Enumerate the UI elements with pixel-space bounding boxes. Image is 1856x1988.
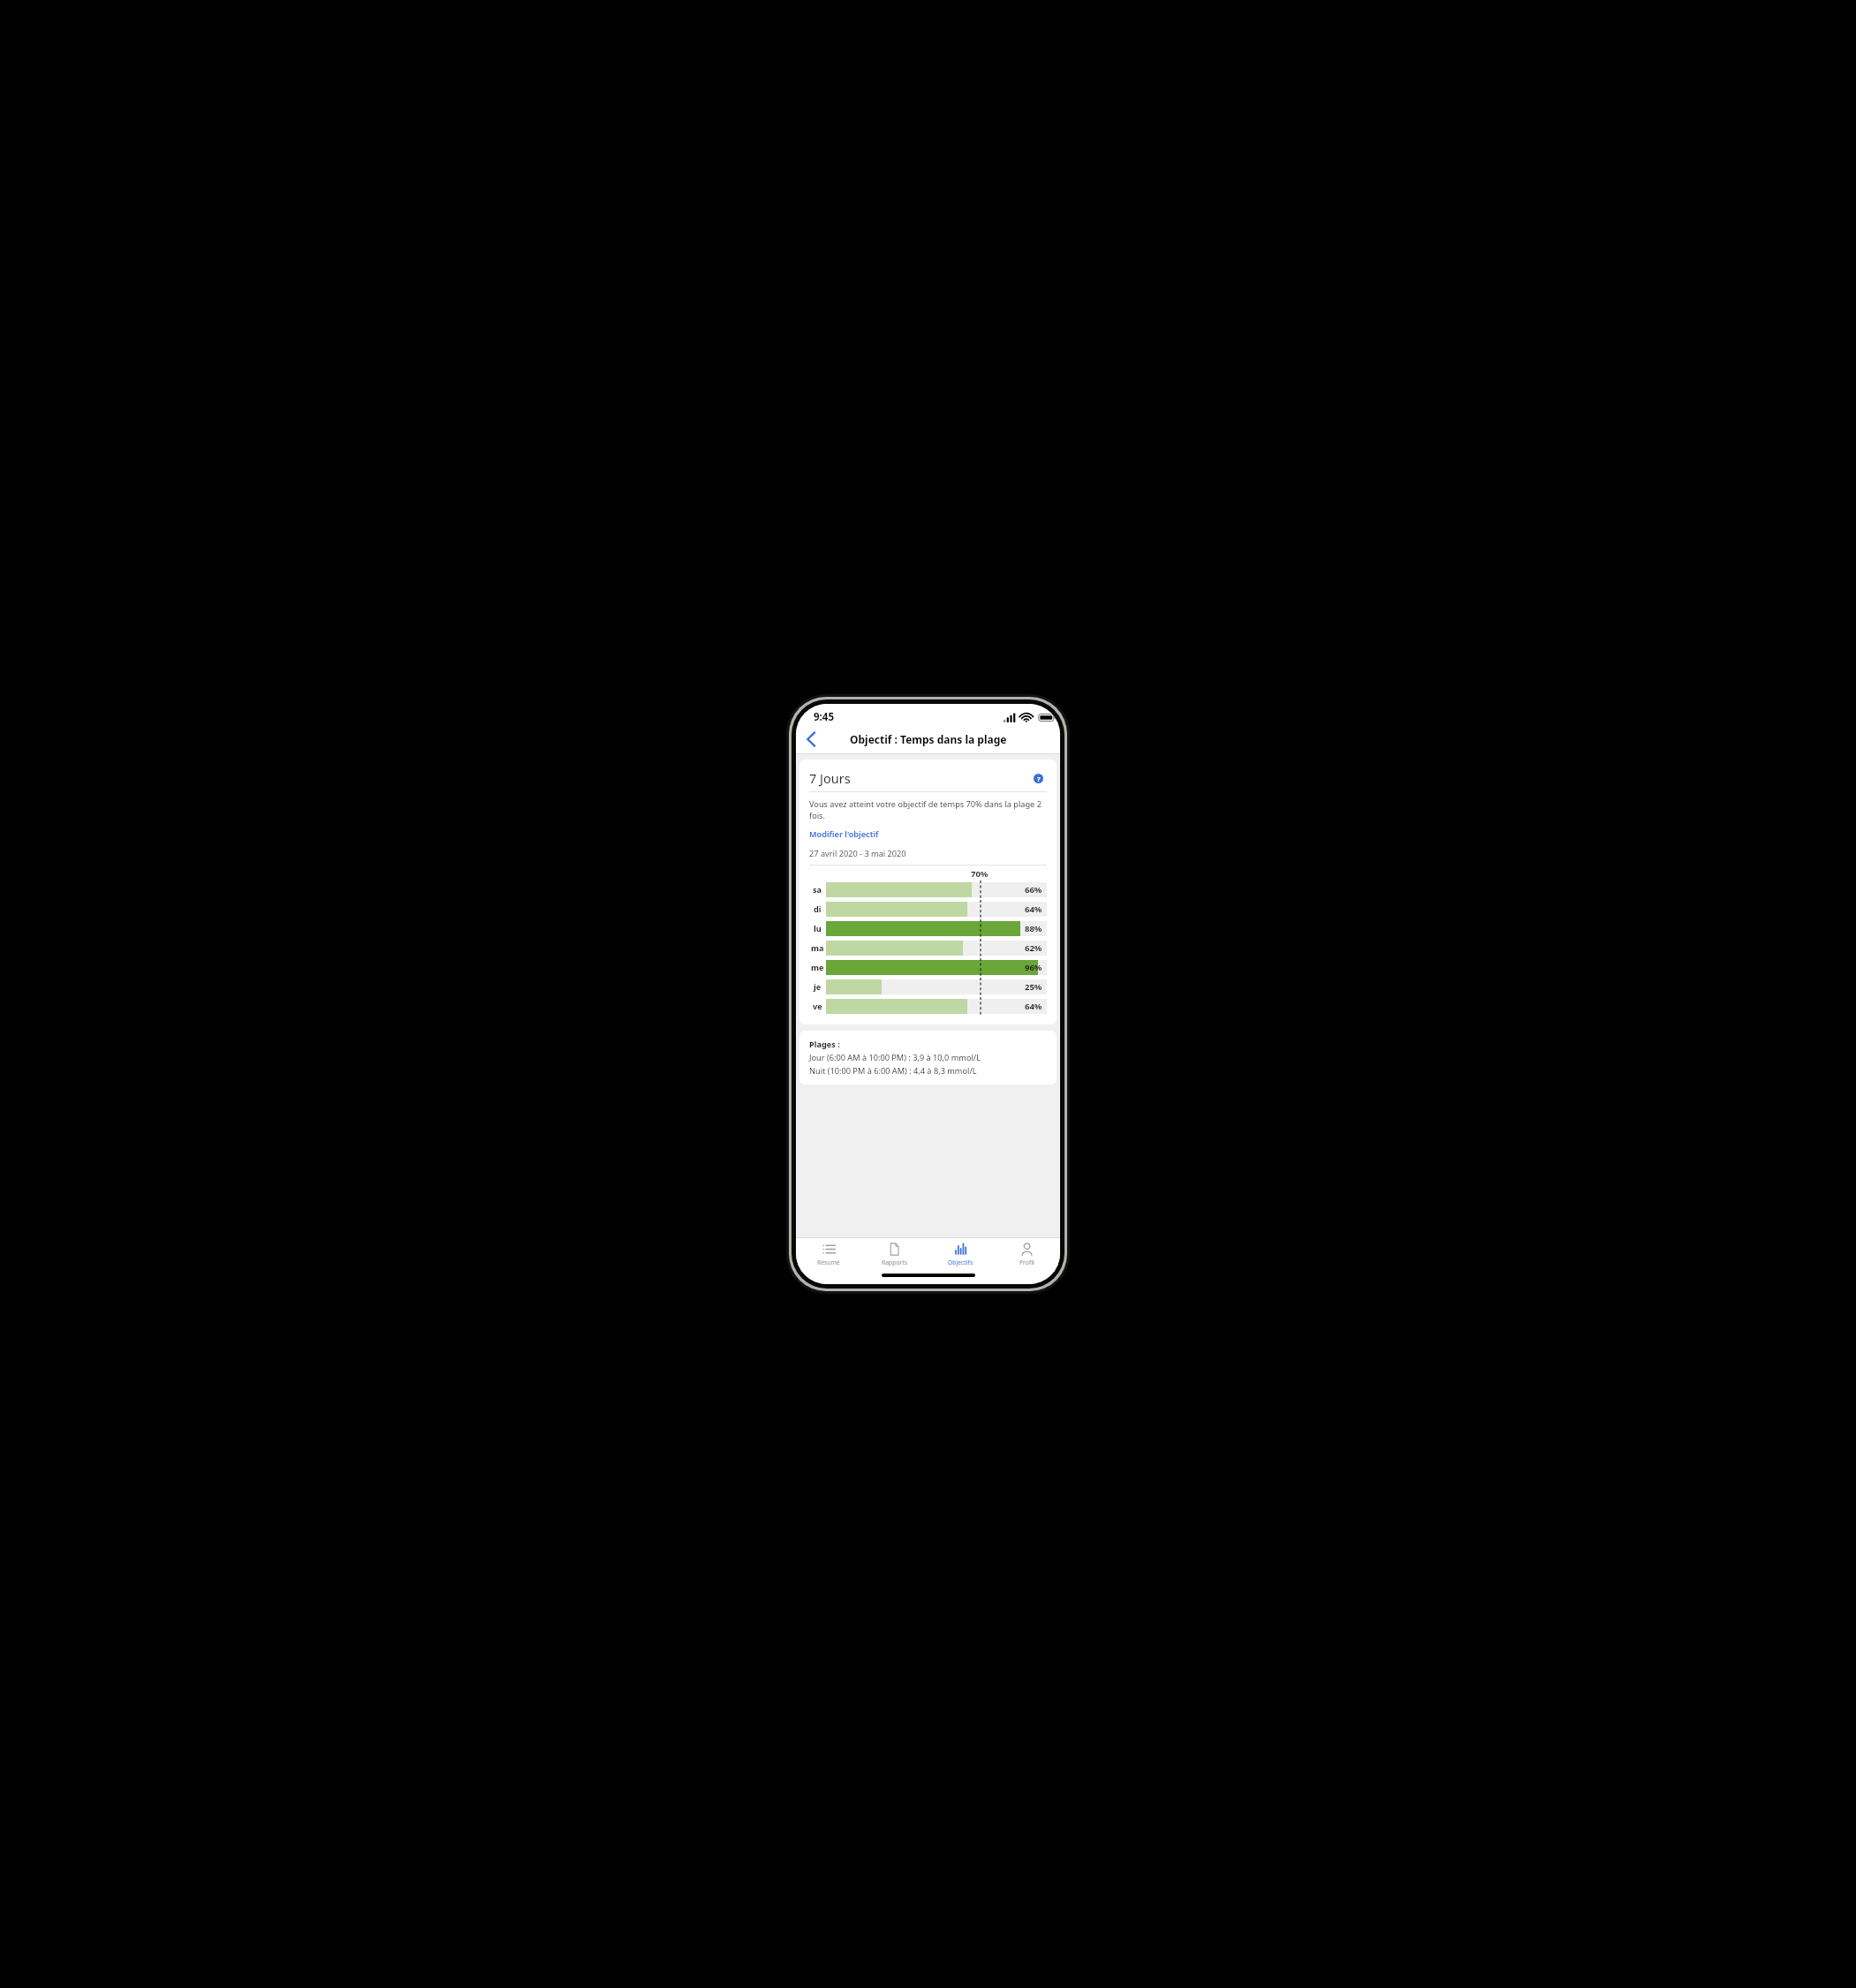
staticText: 66% bbox=[1025, 884, 1042, 896]
staticText: 25% bbox=[1025, 981, 1042, 993]
staticText: 64% bbox=[1025, 1001, 1042, 1012]
staticText: Nuit (10:00 PM à 6:00 AM) : 4,4 à 8,3 mm… bbox=[809, 1065, 977, 1077]
staticText: Jour (6:00 AM à 10:00 PM) : 3,9 à 10,0 m… bbox=[809, 1052, 981, 1063]
staticText: Vous avez atteint votre objectif de temp… bbox=[809, 798, 1047, 821]
staticText: sa bbox=[813, 884, 822, 896]
staticText: 9:45 bbox=[814, 710, 834, 724]
staticText: Objectif : Temps dans la plage bbox=[850, 732, 1007, 746]
staticText: Profil bbox=[1019, 1259, 1034, 1266]
button[interactable]: Profil bbox=[994, 1238, 1060, 1270]
staticText: 27 avril 2020 - 3 mai 2020 bbox=[809, 848, 906, 859]
staticText: di bbox=[814, 903, 822, 915]
button[interactable]: Modifier l'objectif bbox=[809, 828, 879, 840]
staticText: 7 Jours bbox=[809, 769, 851, 787]
staticText: Rapports bbox=[882, 1259, 908, 1266]
staticText: ? bbox=[1037, 775, 1041, 783]
button[interactable]: Retour bbox=[796, 727, 826, 752]
staticText: ve bbox=[813, 1001, 822, 1012]
staticText: Plages : bbox=[809, 1039, 840, 1050]
staticText: 62% bbox=[1025, 942, 1042, 954]
staticText: Objectifs bbox=[948, 1259, 973, 1266]
button[interactable]: Rapports bbox=[861, 1238, 928, 1270]
staticText: je bbox=[814, 981, 822, 993]
staticText: 96% bbox=[1025, 962, 1042, 973]
staticText: Modifier l'objectif bbox=[809, 828, 879, 840]
staticText: lu bbox=[814, 923, 822, 934]
staticText: me bbox=[811, 962, 824, 973]
staticText: 64% bbox=[1025, 903, 1042, 915]
button[interactable]: Objectifs bbox=[928, 1238, 994, 1270]
staticText: 70% bbox=[971, 868, 989, 880]
staticText: ma bbox=[811, 942, 824, 954]
staticText: Résumé bbox=[817, 1259, 840, 1266]
button[interactable]: Aide bbox=[1029, 769, 1047, 787]
staticText: 88% bbox=[1025, 923, 1042, 934]
button[interactable]: Résumé bbox=[796, 1238, 861, 1270]
